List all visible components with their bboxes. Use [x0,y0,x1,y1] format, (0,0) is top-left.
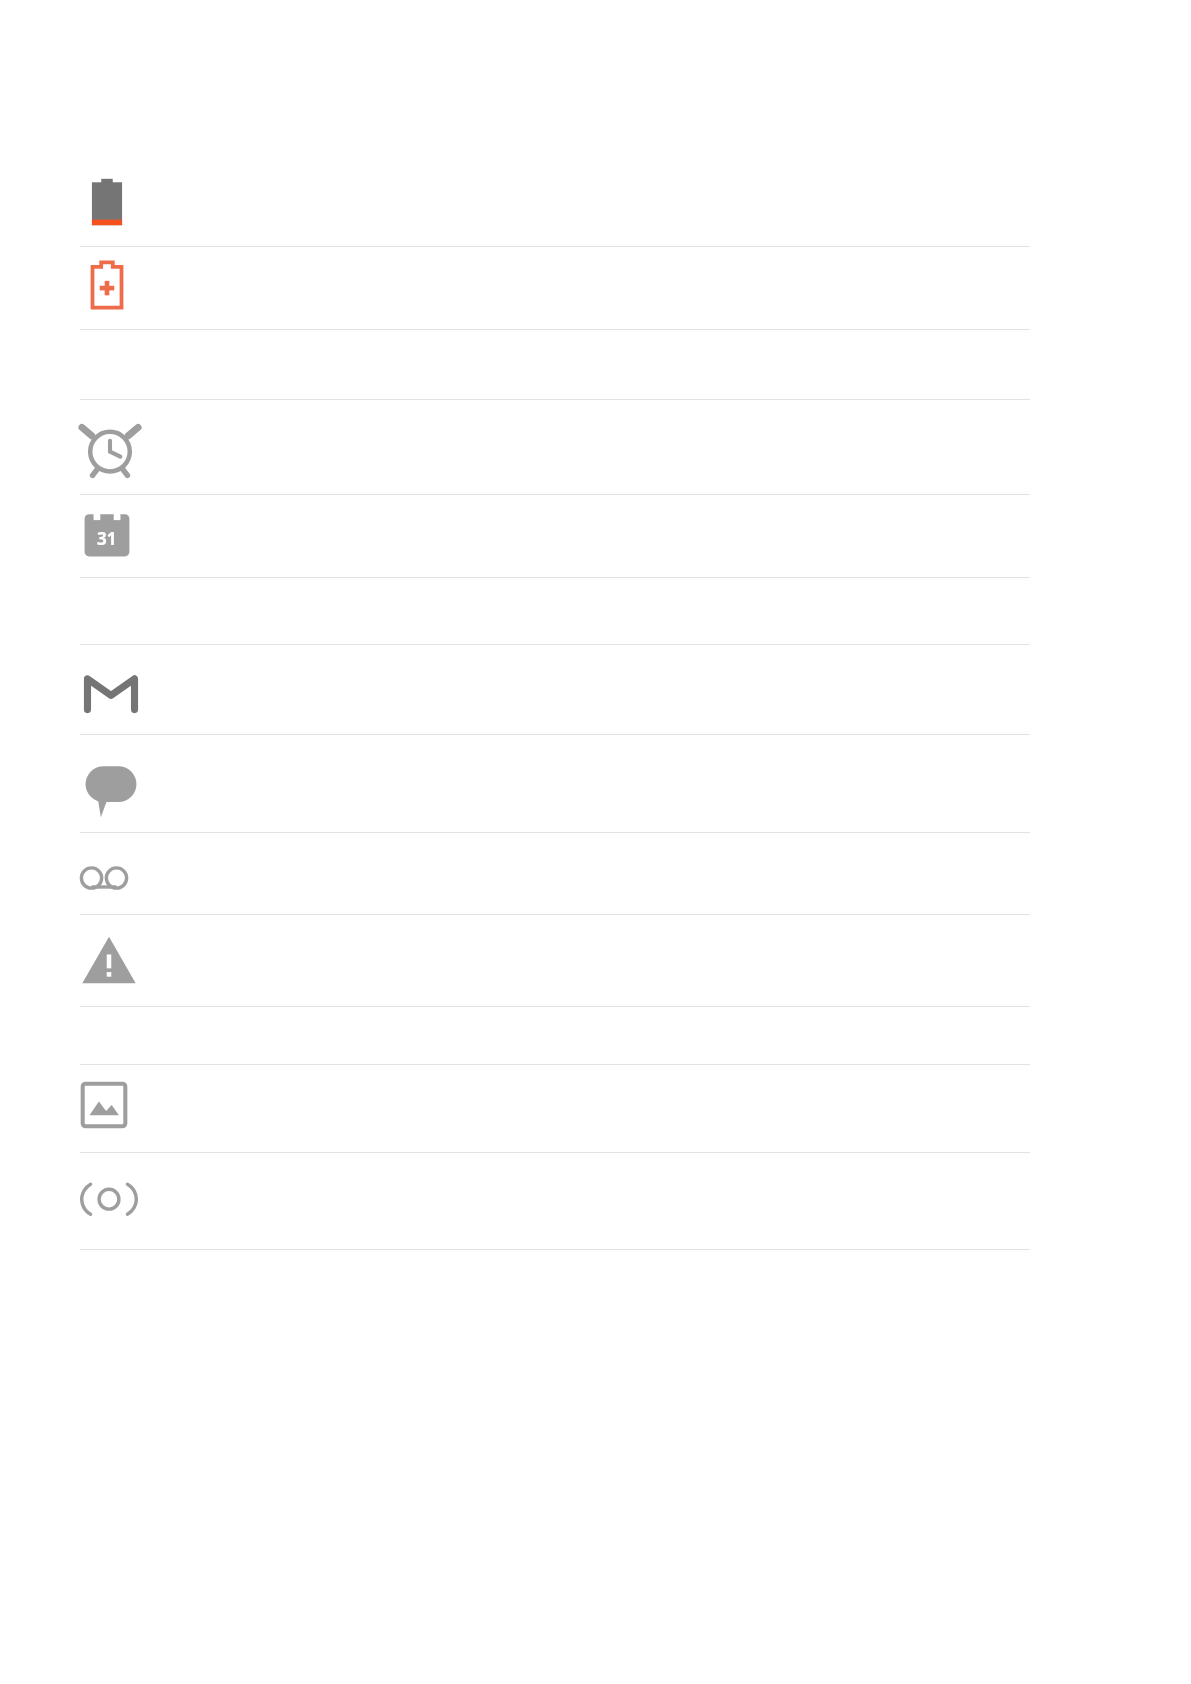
button[interactable]: Alarm [0,400,1191,495]
button[interactable]: Battery low [0,165,1191,247]
button[interactable] [0,1007,1191,1065]
button[interactable] [0,330,1191,400]
button[interactable]: Gmail [0,645,1191,735]
button[interactable]: Calendar [0,495,1191,578]
staticText: 31 [97,527,117,550]
button[interactable]: Cast [0,1153,1191,1250]
button[interactable]: Image [0,1065,1191,1153]
button[interactable]: Battery saver [0,247,1191,330]
button[interactable] [0,578,1191,645]
button[interactable]: Warning [0,915,1191,1007]
button[interactable]: Messages [0,735,1191,833]
button[interactable]: Voicemail [0,833,1191,915]
